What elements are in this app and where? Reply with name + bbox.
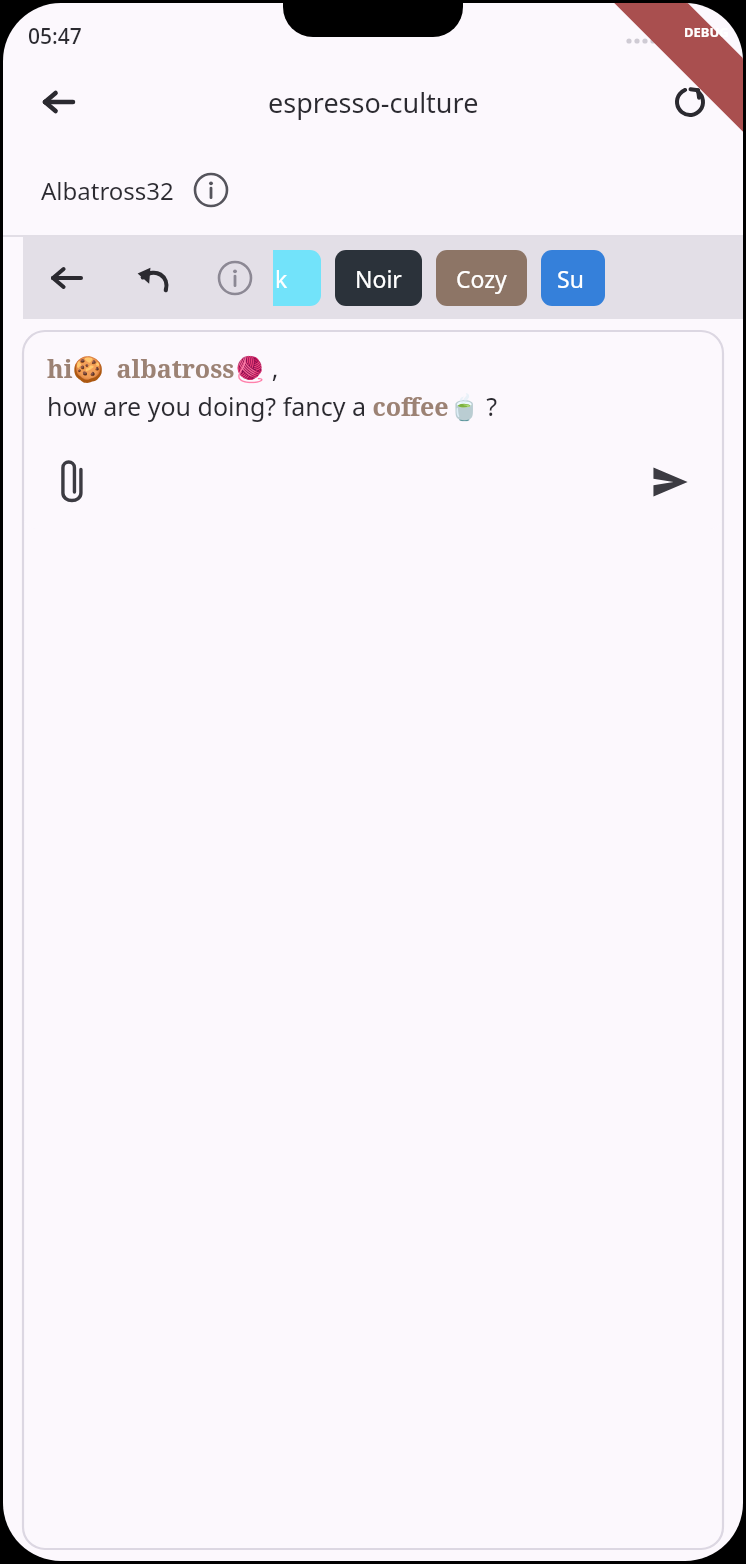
staticText: Noir <box>355 263 402 294</box>
button[interactable]: Info <box>213 256 257 300</box>
staticText: Cozy <box>456 263 507 294</box>
button[interactable]: Su <box>541 250 605 306</box>
button[interactable]: Info <box>190 169 232 211</box>
button[interactable]: Undo <box>127 252 179 304</box>
button[interactable]: Back <box>41 253 91 303</box>
button[interactable]: Attach file <box>47 453 99 511</box>
staticText: how are you doing? fancy a coffee🍵 ? <box>47 389 498 423</box>
button[interactable]: k <box>273 250 321 306</box>
staticText: k <box>275 263 288 294</box>
button[interactable]: Send <box>641 453 699 511</box>
staticText: 05:47 <box>28 22 82 51</box>
staticText: DEBUG <box>684 23 729 41</box>
button[interactable]: Cozy <box>436 250 527 306</box>
staticText: hi🍪 albatross🧶 , <box>47 351 279 385</box>
button[interactable]: Noir <box>335 250 422 306</box>
button[interactable]: Refresh <box>663 75 717 129</box>
staticText: Su <box>557 263 584 294</box>
staticText: espresso-culture <box>268 84 479 121</box>
button[interactable]: Back <box>29 73 87 131</box>
staticText: Albatross32 <box>41 174 174 207</box>
